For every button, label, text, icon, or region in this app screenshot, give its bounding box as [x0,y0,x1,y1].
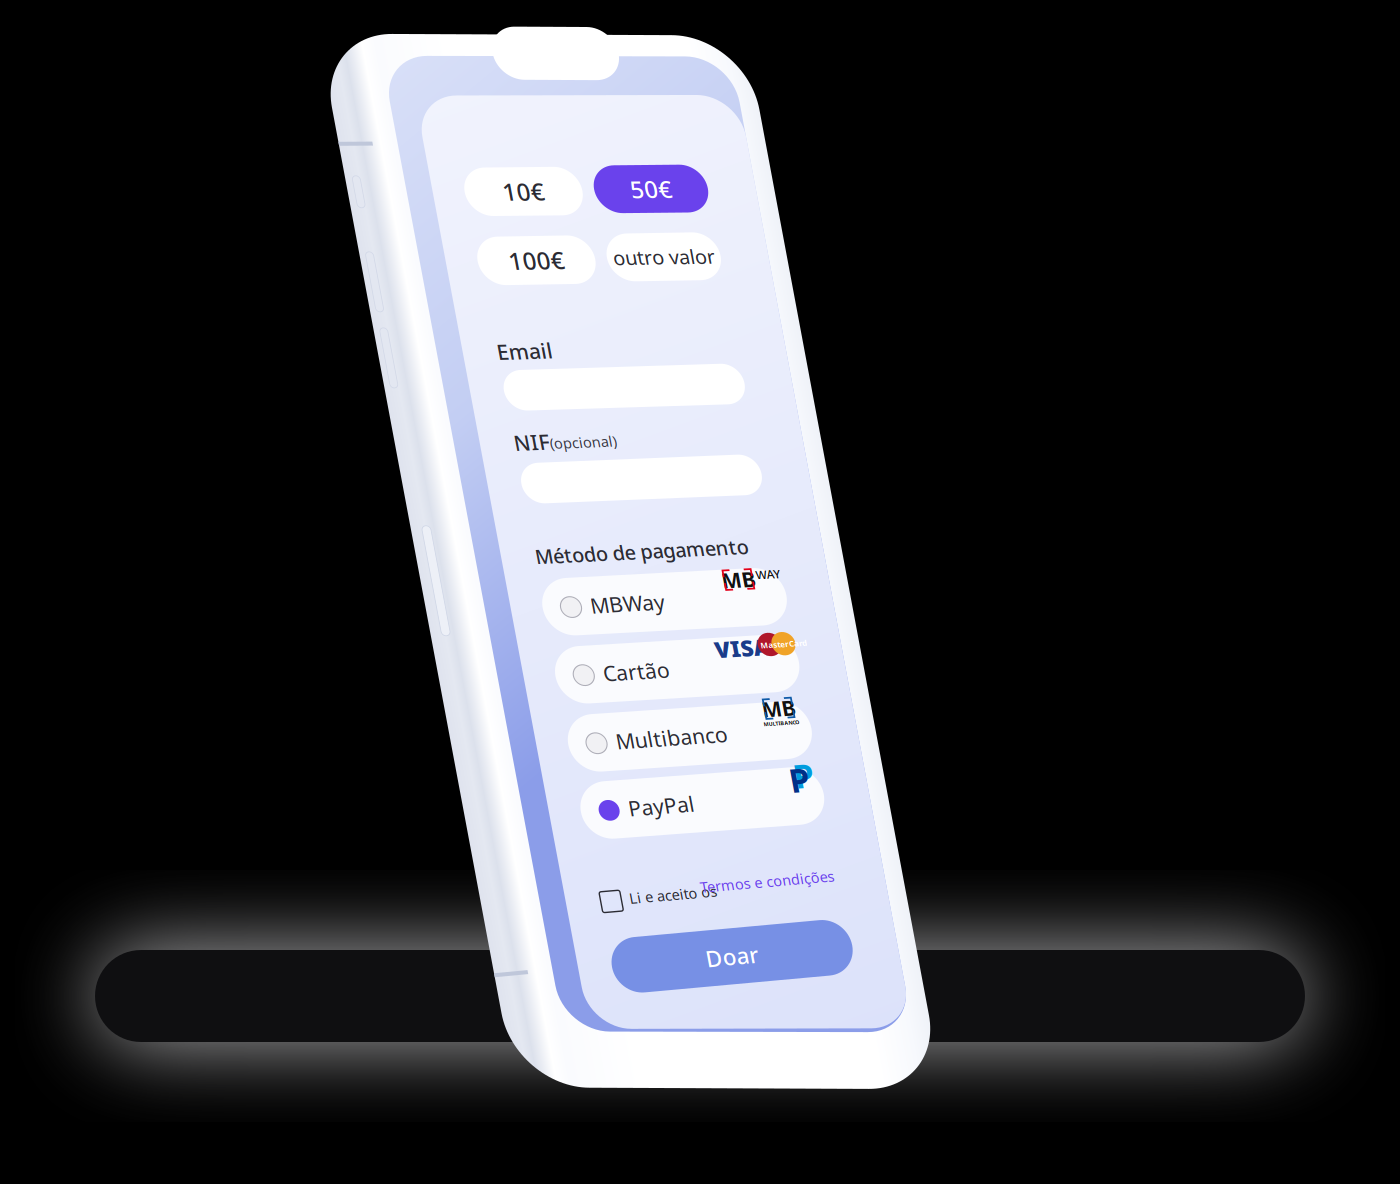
button[interactable]: Termos e condições [0,0,1400,1184]
button[interactable]: Doar [0,0,1400,1184]
button[interactable]: Cartão [0,0,1400,1184]
button[interactable]: outro valor [0,0,1400,1184]
button[interactable]: PayPal [0,0,1400,1184]
button[interactable]: 10€ [0,0,1400,1184]
button[interactable]: MBWay [0,0,1400,1184]
button[interactable]: Multibanco [0,0,1400,1184]
button[interactable]: 100€ [0,0,1400,1184]
button[interactable] [0,0,1400,1184]
button[interactable]: 50€ [0,0,1400,1184]
